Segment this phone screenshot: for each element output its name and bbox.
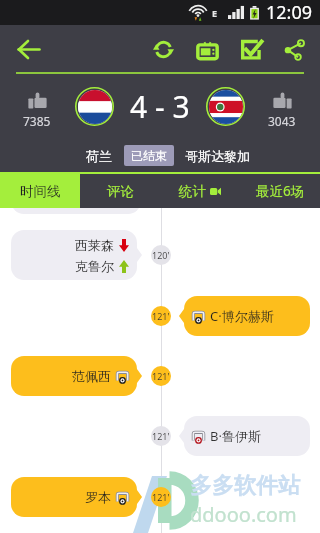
button[interactable]: 最近6场 <box>240 174 320 208</box>
staticText: 范佩西 <box>72 368 111 384</box>
button[interactable]: 时间线 <box>0 174 80 208</box>
button[interactable]: 统计 <box>160 174 240 208</box>
button[interactable]: 评论 <box>80 174 160 208</box>
staticText: 时间线 <box>20 183 61 200</box>
staticText: 已结束 <box>131 148 167 163</box>
staticText: 荷兰 <box>86 148 112 164</box>
button[interactable]: B·鲁伊斯 <box>184 416 310 456</box>
button[interactable]: 西莱森 <box>11 230 137 280</box>
staticText: 罗本 <box>85 489 111 505</box>
staticText: 统计 <box>179 183 206 200</box>
staticText: 多多软件站 <box>190 472 300 500</box>
button[interactable]: 范佩西 <box>11 356 137 396</box>
button[interactable]: Refresh <box>141 27 185 71</box>
staticText: 克鲁尔 <box>75 258 114 274</box>
staticText: 最近6场 <box>256 182 305 200</box>
staticText: ddooo.com <box>190 501 297 528</box>
staticText: 121' <box>152 491 170 503</box>
staticText: 121' <box>152 370 170 382</box>
staticText: 7385 <box>23 113 51 129</box>
button[interactable]: 罗本 <box>11 477 137 517</box>
button[interactable]: C·博尔赫斯 <box>184 296 310 336</box>
staticText: 西莱森 <box>75 237 114 253</box>
button[interactable]: Share <box>273 27 317 71</box>
staticText: 4 - 3 <box>130 86 190 127</box>
staticText: 3043 <box>268 113 296 129</box>
staticText: 哥斯达黎加 <box>185 148 250 164</box>
staticText: C·博尔赫斯 <box>210 307 274 325</box>
staticText: 评论 <box>107 183 134 200</box>
staticText: B·鲁伊斯 <box>210 427 261 445</box>
staticText: 121' <box>152 430 170 442</box>
button[interactable]: Select <box>229 27 273 71</box>
staticText: 12:09 <box>266 0 313 25</box>
staticText: 121' <box>152 310 170 322</box>
button[interactable]: Back <box>15 36 41 62</box>
staticText: 120' <box>152 249 170 261</box>
staticText: E <box>212 7 218 19</box>
button[interactable]: Live TV <box>185 27 229 71</box>
